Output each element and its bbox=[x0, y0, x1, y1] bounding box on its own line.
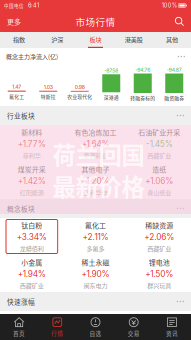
staticText: 转融券标的 bbox=[130, 94, 155, 101]
staticText: 西藏矿业 bbox=[20, 281, 44, 290]
staticText: 更多 bbox=[7, 16, 21, 26]
staticText: +2.06% bbox=[144, 232, 174, 242]
button[interactable]: 小金属 bbox=[0, 255, 64, 292]
staticText: 小金属 bbox=[21, 257, 42, 267]
staticText: 钛白粉 bbox=[21, 220, 42, 230]
button[interactable]: 稀缺资源 bbox=[127, 218, 191, 255]
staticText: 金利华电 bbox=[83, 188, 107, 197]
staticText: +3.34% bbox=[17, 232, 47, 242]
button[interactable]: 煤炭开采 bbox=[0, 162, 64, 199]
staticText: 概念主力净流入(亿) bbox=[6, 52, 58, 61]
staticText: 农业现代化 bbox=[67, 93, 92, 100]
staticText: 指数 bbox=[13, 35, 25, 44]
staticText: 特斯拉 bbox=[41, 93, 56, 100]
staticText: +1.64% bbox=[81, 139, 109, 149]
staticText: 快速涨幅 bbox=[7, 297, 35, 306]
staticText: 概念板块 bbox=[7, 204, 35, 213]
staticText: 章源钨业 bbox=[83, 151, 107, 160]
staticText: 石油矿业开采 bbox=[138, 127, 180, 137]
staticText: 锂电池 bbox=[149, 257, 170, 267]
staticText: 6:41 bbox=[24, 2, 39, 9]
staticText: 1.03 bbox=[44, 84, 53, 90]
staticText: 闽东电力 bbox=[83, 281, 107, 290]
button[interactable]: 石油矿业开采 bbox=[127, 125, 191, 162]
button[interactable]: 沪深 bbox=[38, 32, 76, 48]
staticText: +1.77% bbox=[18, 139, 46, 149]
button[interactable]: 新材料 bbox=[0, 125, 64, 162]
staticText: -94.87 bbox=[167, 67, 182, 73]
staticText: 港美股 bbox=[125, 35, 143, 44]
staticText: +1.42% bbox=[18, 176, 46, 186]
staticText: 群兴玩具 bbox=[147, 281, 171, 290]
staticText: 氟化工 bbox=[85, 220, 106, 230]
staticText: 沪深 bbox=[51, 35, 63, 44]
staticText: 其他电子 bbox=[81, 164, 109, 174]
staticText: 红阳能源 bbox=[20, 188, 44, 197]
button[interactable]: 指数 bbox=[0, 32, 38, 48]
button[interactable]: 板块 bbox=[76, 32, 115, 48]
staticText: 融资融券 bbox=[164, 94, 184, 101]
staticText: 荷兰回国 bbox=[52, 137, 144, 171]
staticText: +1.94% bbox=[18, 269, 46, 279]
staticText: +1.90% bbox=[81, 269, 109, 279]
staticText: 交易 bbox=[128, 329, 140, 337]
staticText: 煤炭开采 bbox=[18, 164, 46, 174]
staticText: 0.98 bbox=[75, 84, 85, 90]
staticText: +1.20% bbox=[81, 176, 109, 186]
staticText: -87.58 bbox=[104, 67, 118, 74]
button[interactable]: 造纸 bbox=[127, 162, 191, 199]
staticText: 多氟多 bbox=[86, 244, 104, 253]
button[interactable]: 自选 bbox=[76, 314, 115, 340]
button[interactable]: 有色冶炼加工 bbox=[64, 125, 127, 162]
staticText: 行业板块 bbox=[7, 111, 35, 120]
staticText: 西藏矿业 bbox=[147, 244, 171, 253]
staticText: 市场行情 bbox=[75, 14, 115, 28]
button[interactable]: 首页 bbox=[0, 314, 38, 340]
staticText: 新材料 bbox=[21, 127, 42, 137]
button[interactable]: 资讯 bbox=[153, 314, 191, 340]
staticText: 1.47 bbox=[12, 84, 21, 90]
button[interactable]: 锂电池 bbox=[127, 255, 191, 292]
button[interactable]: 行情 bbox=[38, 314, 76, 340]
button[interactable]: 更多 bbox=[0, 11, 28, 32]
staticText: 行情 bbox=[51, 329, 63, 337]
staticText: 菲利华 bbox=[23, 151, 41, 160]
staticText: 造纸 bbox=[152, 164, 166, 174]
staticText: +1.06% bbox=[145, 176, 173, 186]
staticText: 自选 bbox=[89, 329, 101, 337]
staticText: 西藏矿业 bbox=[147, 151, 171, 160]
staticText: +2.11% bbox=[82, 232, 108, 242]
staticText: -1.45% bbox=[146, 139, 173, 149]
staticText: 深港通 bbox=[104, 94, 119, 101]
staticText: 稀缺资源 bbox=[145, 220, 173, 230]
staticText: 有色冶炼加工 bbox=[74, 127, 116, 137]
button[interactable]: 其他 bbox=[153, 32, 191, 48]
button[interactable]: 其他电子 bbox=[64, 162, 127, 199]
button[interactable]: 氟化工 bbox=[64, 218, 127, 255]
button[interactable]: 稀土永磁 bbox=[64, 255, 127, 292]
staticText: 中国电信 bbox=[4, 2, 24, 9]
staticText: +1.50% bbox=[145, 269, 173, 279]
button[interactable]: 搜索 bbox=[168, 11, 191, 32]
staticText: 首页 bbox=[13, 329, 25, 337]
staticText: -94.76 bbox=[135, 67, 150, 73]
staticText: 资讯 bbox=[166, 329, 178, 337]
button[interactable]: 交易 bbox=[115, 314, 153, 340]
staticText: 青山纸业 bbox=[147, 188, 171, 197]
button[interactable]: 港美股 bbox=[115, 32, 153, 48]
button[interactable]: 钛白粉 bbox=[0, 218, 64, 255]
staticText: 最新价格 bbox=[52, 169, 144, 203]
staticText: 龙蟒佰利 bbox=[20, 244, 44, 253]
staticText: 稀土永磁 bbox=[81, 257, 109, 267]
staticText: 其他 bbox=[166, 35, 178, 44]
staticText: 氟化工 bbox=[9, 93, 24, 100]
staticText: 100% bbox=[162, 2, 177, 9]
staticText: 板块 bbox=[89, 35, 101, 44]
